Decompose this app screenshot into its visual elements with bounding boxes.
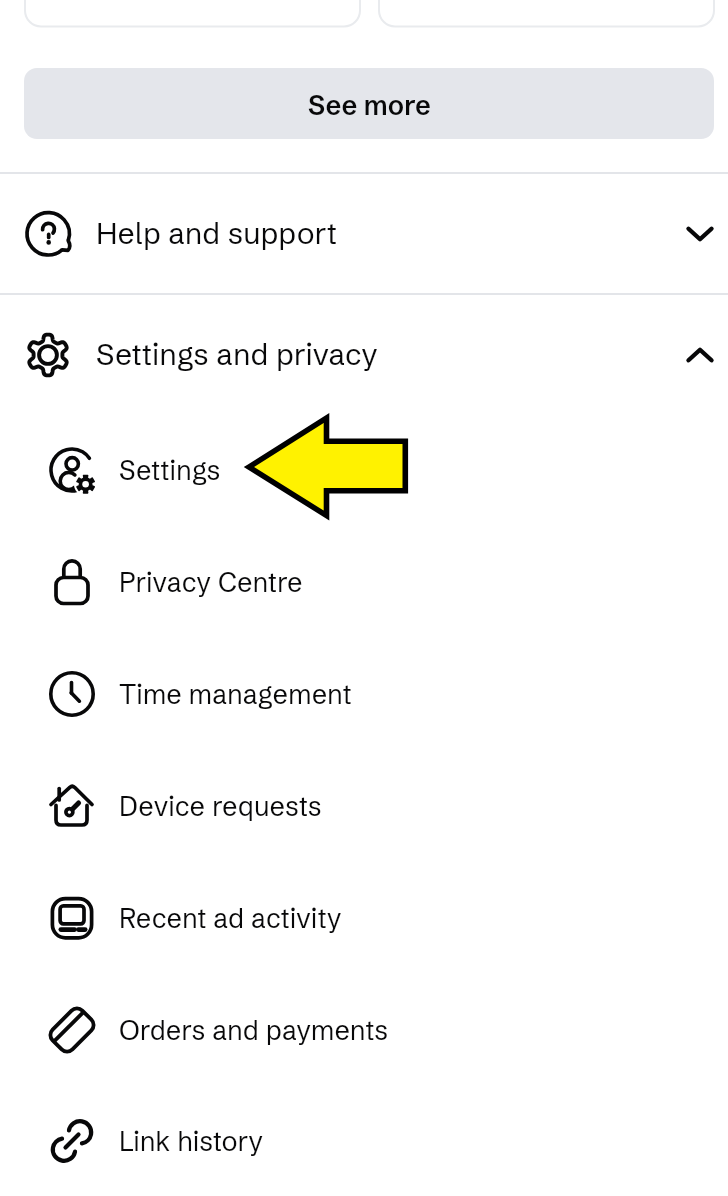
button[interactable]: Device requests (0, 750, 728, 862)
staticText: Link history (119, 1125, 264, 1158)
staticText: Recent ad activity (119, 902, 342, 935)
button[interactable]: Time management (0, 638, 728, 750)
staticText: See more (308, 89, 431, 122)
button[interactable]: Settings and privacy (0, 295, 728, 414)
button[interactable]: See more (24, 68, 714, 139)
staticText: Device requests (119, 790, 322, 823)
button[interactable]: Link history (0, 1086, 728, 1196)
button[interactable]: Help and support (0, 174, 728, 293)
other: Collapse section (676, 331, 724, 379)
button[interactable]: Recent ad activity (0, 862, 728, 974)
staticText: Privacy Centre (119, 566, 303, 599)
button[interactable]: Settings (0, 414, 728, 526)
staticText: Help and support (96, 215, 337, 252)
staticText: Time management (119, 678, 352, 711)
button[interactable]: Privacy Centre (0, 526, 728, 638)
staticText: Settings (119, 454, 221, 487)
button[interactable]: Orders and payments (0, 974, 728, 1086)
other: Expand section (676, 210, 724, 258)
staticText: Settings and privacy (96, 336, 378, 373)
staticText: Orders and payments (119, 1014, 388, 1047)
